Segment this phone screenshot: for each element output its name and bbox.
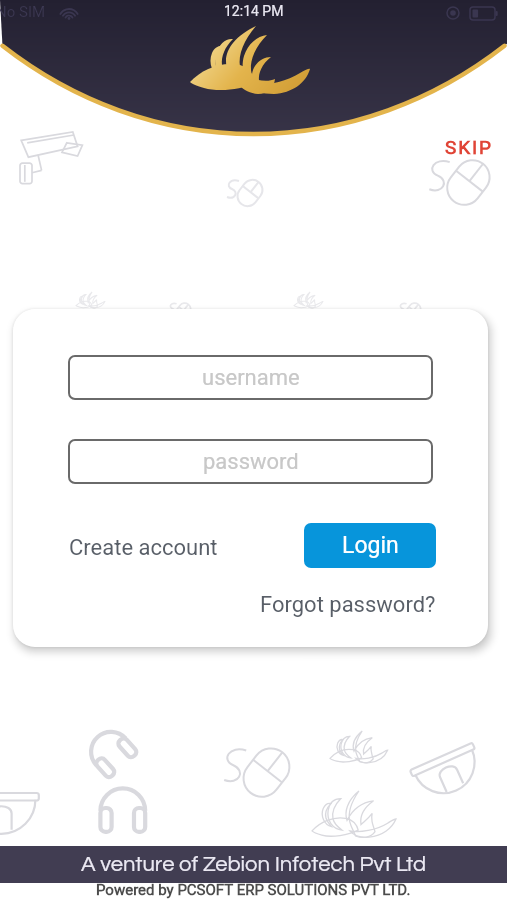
- staticText: SKIP: [445, 136, 493, 158]
- button[interactable]: username: [68, 355, 433, 400]
- button[interactable]: Forgot password?: [253, 586, 443, 624]
- button[interactable]: Create account: [62, 529, 225, 567]
- staticText: No SIM: [0, 3, 46, 21]
- staticText: password: [203, 449, 299, 475]
- staticText: Create account: [69, 535, 218, 561]
- staticText: Powered by PCSOFT ERP SOLUTIONS PVT LTD.: [96, 881, 411, 899]
- staticText: 12:14 PM: [224, 3, 284, 19]
- staticText: Login: [342, 532, 399, 559]
- staticText: Forgot password?: [260, 592, 436, 618]
- staticText: username: [202, 365, 300, 391]
- button[interactable]: Login: [304, 523, 436, 568]
- staticText: A venture of Zebion Infotech Pvt Ltd: [81, 853, 427, 876]
- button[interactable]: password: [68, 439, 433, 484]
- button[interactable]: SKIP: [437, 131, 501, 163]
